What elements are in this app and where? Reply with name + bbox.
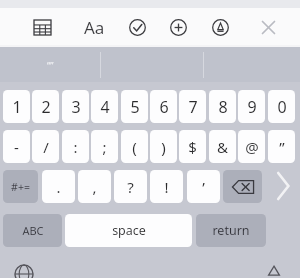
button[interactable]: ) (150, 130, 177, 163)
staticText: 4 (100, 96, 110, 118)
staticText: / (43, 137, 49, 157)
button[interactable]: 5 (121, 90, 148, 123)
staticText: 1 (12, 96, 22, 118)
staticText: 5 (130, 96, 140, 118)
button[interactable]: @ (238, 130, 265, 163)
staticText: Aa (84, 16, 105, 39)
staticText: ! (164, 177, 169, 197)
button[interactable]: ! (150, 170, 183, 203)
staticText: - (14, 137, 19, 157)
button[interactable]: 3 (62, 90, 89, 123)
staticText: 3 (71, 96, 81, 118)
staticText: ( (132, 137, 137, 157)
staticText: ? (127, 177, 134, 197)
button[interactable]: 1 (3, 90, 30, 123)
button[interactable]: ” (268, 130, 295, 163)
button[interactable]: 4 (91, 90, 118, 123)
staticText: ” (279, 137, 285, 157)
staticText: ; (102, 137, 107, 157)
staticText: & (217, 137, 228, 157)
button[interactable]: 8 (209, 90, 236, 123)
button[interactable]: Change keyboard language (14, 264, 34, 278)
staticText: return (212, 222, 250, 239)
staticText: . (56, 177, 61, 197)
button[interactable]: Backspace (223, 170, 262, 203)
button[interactable]: & (209, 130, 236, 163)
button[interactable]: Close (256, 15, 280, 39)
staticText: , (92, 177, 97, 197)
button[interactable]: - (3, 130, 30, 163)
button[interactable]: : (62, 130, 89, 163)
staticText: #+= (11, 180, 30, 194)
staticText: ’ (202, 177, 205, 197)
button[interactable]: Markup (208, 15, 232, 39)
button[interactable]: #+= (3, 170, 38, 203)
staticText: 9 (247, 96, 257, 118)
staticText: 0 (277, 96, 287, 118)
button[interactable]: ? (114, 170, 147, 203)
button[interactable]: 6 (150, 90, 177, 123)
button[interactable]: Dictate (265, 264, 283, 278)
button[interactable]: Aa (78, 14, 110, 40)
staticText: 2 (41, 96, 51, 118)
button[interactable]: ( (121, 130, 148, 163)
button[interactable]: $ (179, 130, 206, 163)
button[interactable]: ; (91, 130, 118, 163)
staticText: space (112, 222, 146, 239)
button[interactable]: Next (272, 168, 294, 204)
staticText: ) (161, 137, 166, 157)
staticText: ABC (22, 223, 44, 238)
button[interactable]: ’ (187, 170, 220, 203)
button[interactable]: Add attachment (166, 15, 190, 39)
button[interactable]: . (42, 170, 75, 203)
button[interactable]: 2 (32, 90, 59, 123)
staticText: $ (188, 137, 197, 157)
button[interactable]: 0 (268, 90, 295, 123)
staticText: 6 (159, 96, 169, 118)
button[interactable]: Insert table (30, 15, 54, 39)
staticText: 7 (188, 96, 198, 118)
staticText: 8 (218, 96, 228, 118)
button[interactable]: return (196, 214, 266, 247)
button[interactable]: space (65, 214, 192, 247)
button[interactable]: ABC (3, 214, 62, 247)
staticText: @ (245, 137, 259, 157)
button[interactable]: Checklist (125, 15, 149, 39)
button[interactable]: / (32, 130, 59, 163)
button[interactable]: 9 (238, 90, 265, 123)
button[interactable]: , (78, 170, 111, 203)
staticText: “” (47, 59, 54, 71)
staticText: : (73, 137, 78, 157)
button[interactable]: 7 (179, 90, 206, 123)
